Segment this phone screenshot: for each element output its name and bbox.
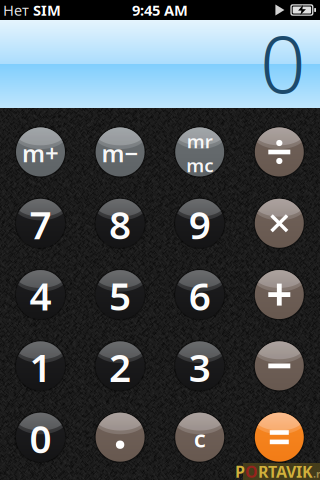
staticText: 9:45 AM: [132, 0, 188, 20]
staticText: Нет: [3, 0, 33, 20]
staticText: 0: [29, 412, 51, 464]
button[interactable]: Multiply: [253, 197, 306, 250]
button[interactable]: 6: [173, 268, 226, 321]
button[interactable]: m−: [94, 125, 147, 178]
staticText: m−: [102, 137, 139, 169]
button[interactable]: 7: [14, 197, 67, 250]
staticText: SIM: [33, 0, 61, 20]
staticText: RTAVIK: [258, 461, 313, 480]
staticText: 0: [260, 9, 306, 115]
staticText: 5: [109, 270, 131, 321]
staticText: m+: [22, 137, 59, 169]
staticText: c: [194, 422, 206, 454]
button[interactable]: 0: [14, 411, 67, 464]
staticText: 8: [109, 199, 131, 250]
staticText: 6: [189, 270, 211, 321]
staticText: 2: [109, 341, 131, 392]
staticText: O: [245, 461, 258, 480]
button[interactable]: Equals: [253, 411, 306, 464]
button[interactable]: 8: [94, 197, 147, 250]
button[interactable]: 2: [94, 339, 147, 392]
button[interactable]: 5: [94, 268, 147, 321]
staticText: mc: [186, 152, 213, 177]
button[interactable]: Plus: [253, 268, 306, 321]
button[interactable]: 9: [173, 197, 226, 250]
button[interactable]: 3: [173, 339, 226, 392]
button[interactable]: c: [173, 411, 226, 464]
staticText: 1: [29, 341, 51, 392]
staticText: 7: [29, 199, 51, 250]
staticText: .ru: [313, 466, 320, 480]
button[interactable]: 4: [14, 268, 67, 321]
button[interactable]: mr mc: [173, 125, 226, 178]
button[interactable]: Divide: [253, 125, 306, 178]
button[interactable]: Minus: [253, 339, 306, 392]
staticText: 4: [29, 270, 51, 321]
staticText: 3: [189, 341, 211, 392]
staticText: mr: [187, 129, 213, 153]
staticText: P: [235, 461, 245, 480]
button[interactable]: Decimal point: [94, 411, 147, 464]
button[interactable]: m+: [14, 125, 67, 178]
staticText: 9: [189, 199, 211, 250]
button[interactable]: 1: [14, 339, 67, 392]
